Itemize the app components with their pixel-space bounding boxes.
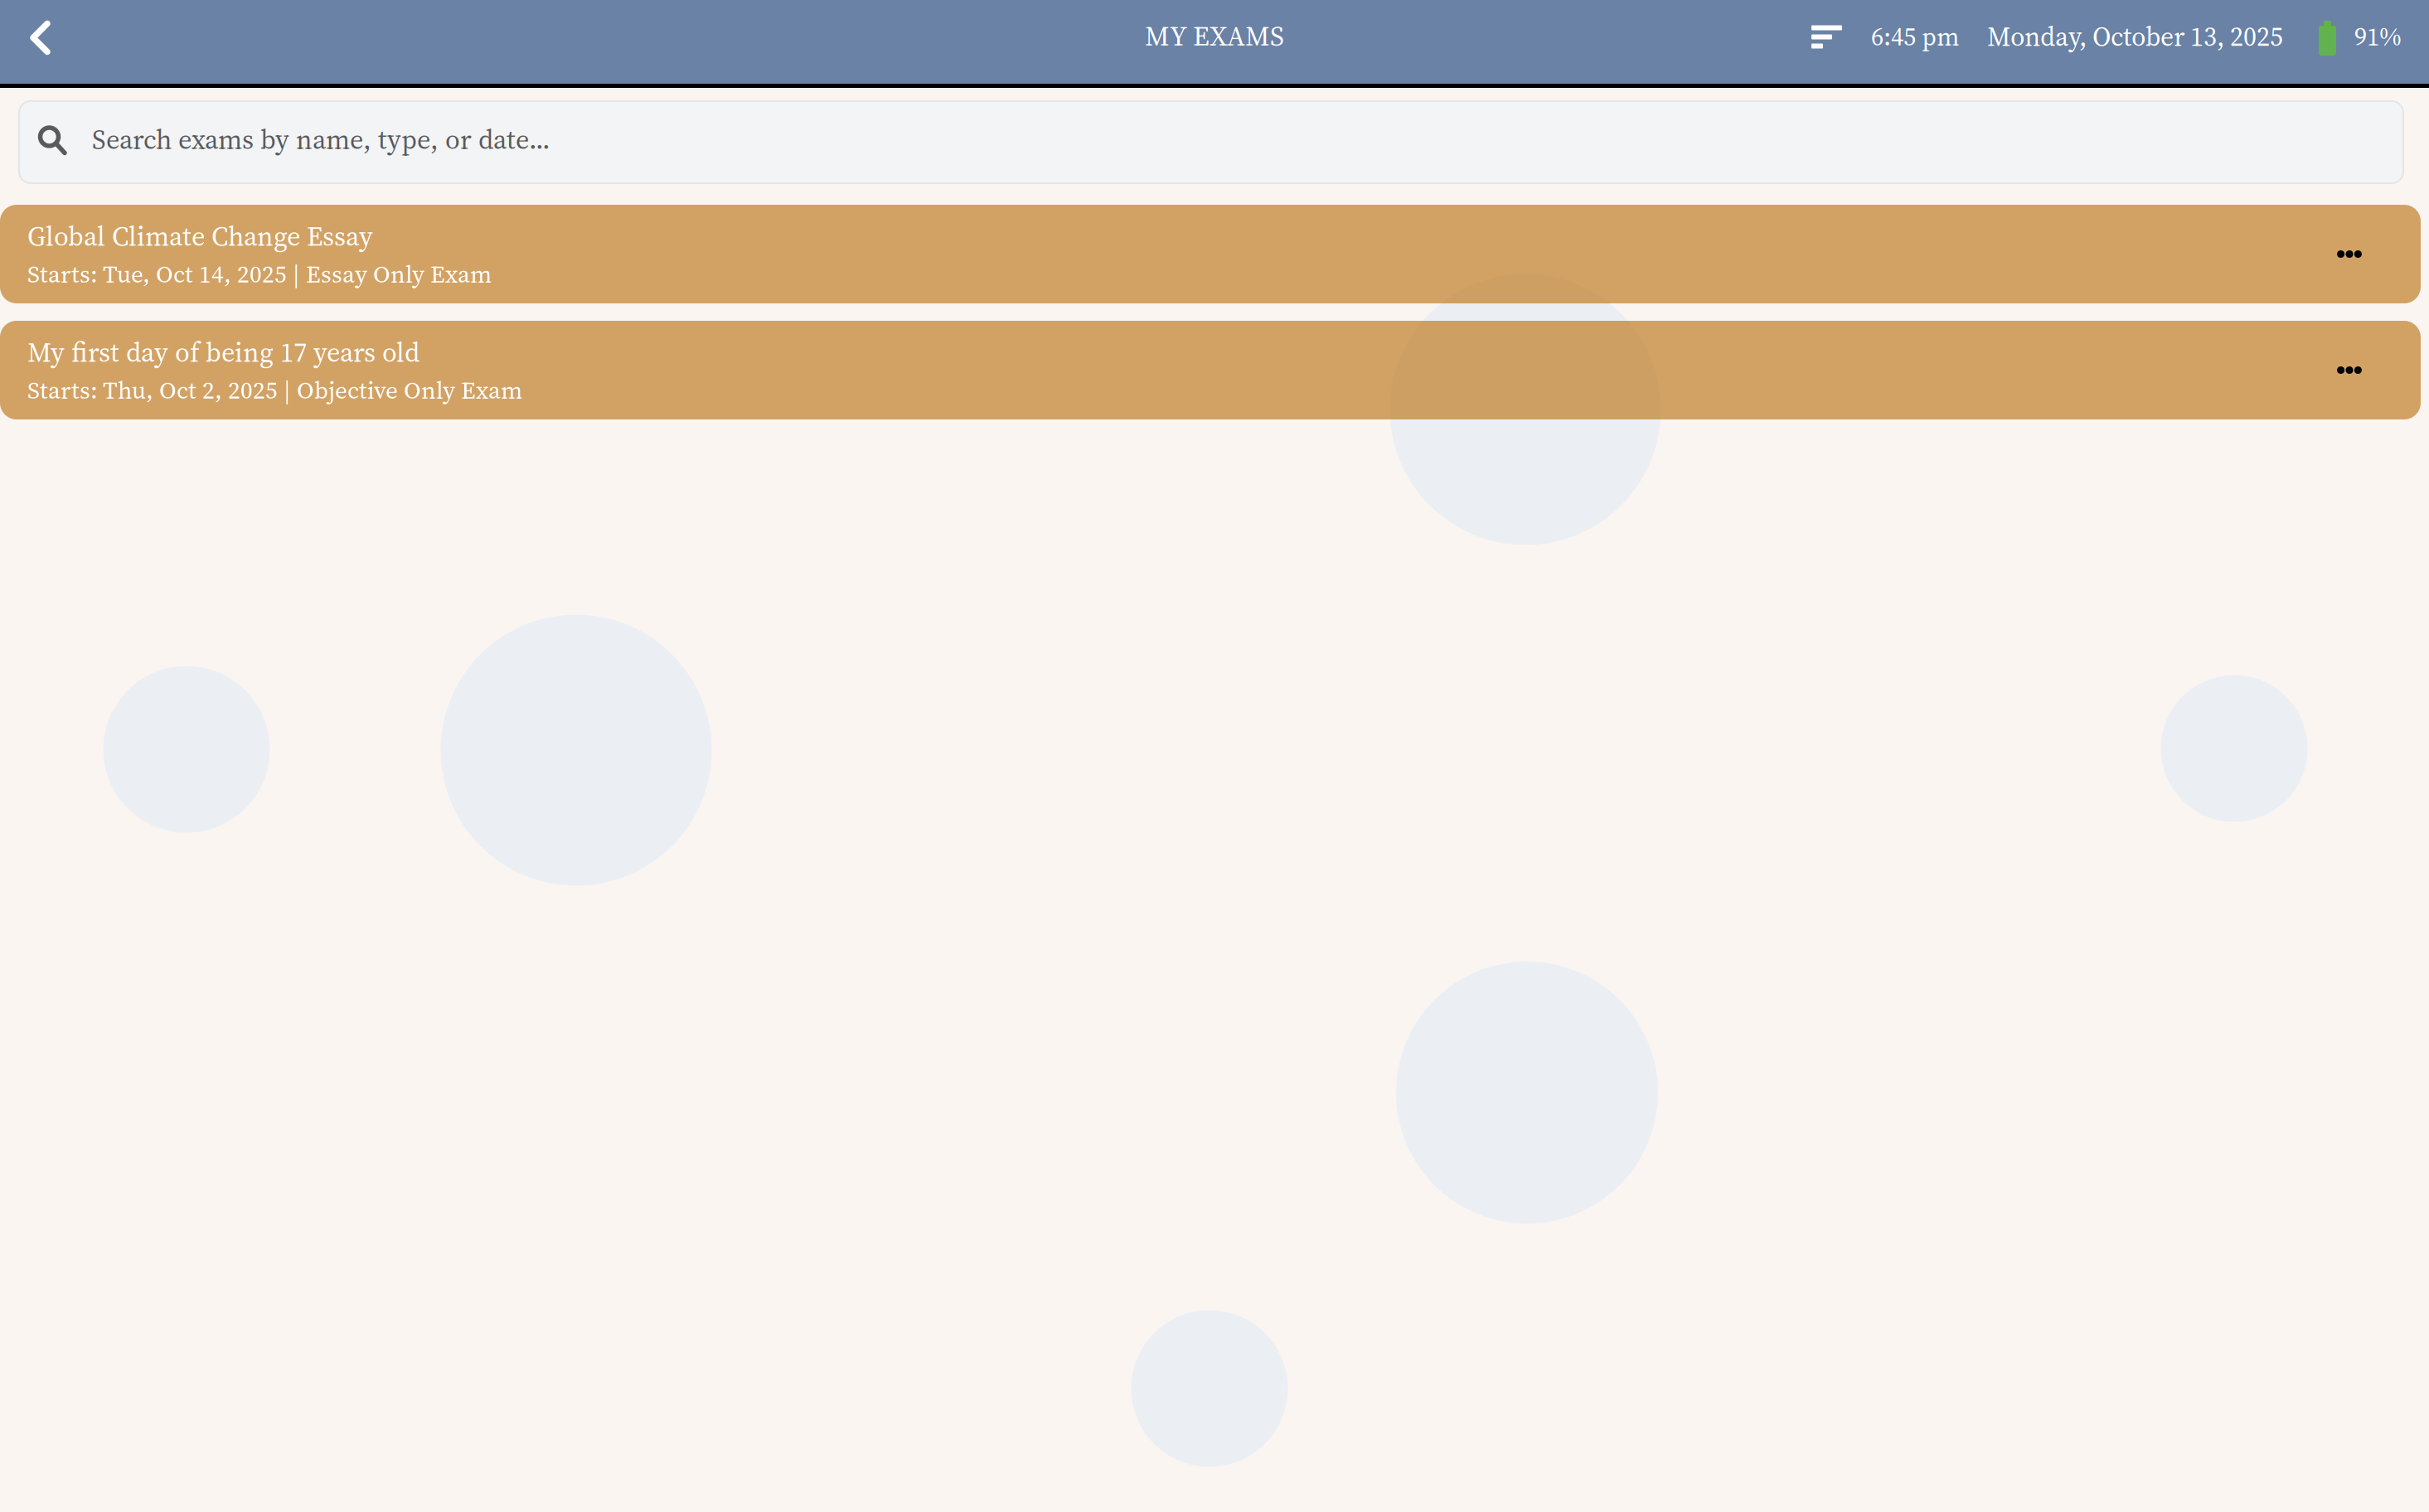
- staticText: Starts: Tue, Oct 14, 2025 | Essay Only E…: [27, 257, 492, 291]
- staticText: Global Climate Change Essay: [27, 218, 373, 255]
- button[interactable]: Back: [0, 7, 69, 77]
- button[interactable]: Search exams by name, type, or date...: [19, 101, 2403, 183]
- button[interactable]: My first day of being 17 years old: [0, 321, 2421, 419]
- staticText: My first day of being 17 years old: [27, 334, 419, 371]
- staticText: 6:45 pm: [1871, 19, 1959, 54]
- staticText: MY EXAMS: [1145, 17, 1284, 55]
- staticText: Search exams by name, type, or date...: [92, 121, 550, 158]
- staticText: Monday, October 13, 2025: [1987, 18, 2283, 55]
- staticText: Starts: Thu, Oct 2, 2025 | Objective Onl…: [27, 373, 522, 407]
- button[interactable]: Sort and filter: [1801, 10, 1842, 73]
- staticText: 91%: [2354, 19, 2402, 54]
- button[interactable]: Global Climate Change Essay: [0, 205, 2421, 303]
